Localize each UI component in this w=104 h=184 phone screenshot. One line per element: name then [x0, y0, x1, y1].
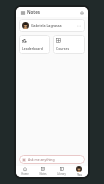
button[interactable]: Notifications — [78, 9, 85, 16]
staticText: Ask me anything — [28, 157, 55, 162]
button[interactable]: More options — [76, 23, 82, 29]
button[interactable]: Courses — [53, 35, 85, 54]
staticText: Home — [21, 172, 29, 176]
staticText: Courses — [56, 46, 70, 51]
button[interactable]: Leaderboard — [19, 35, 50, 54]
button[interactable]: Gabriela Lagrassa — [19, 19, 85, 32]
button[interactable]: Menu — [19, 9, 26, 16]
staticText: You — [77, 173, 82, 177]
staticText: Leaderboard — [22, 46, 43, 51]
button[interactable]: Notes — [34, 166, 52, 177]
staticText: Notes — [27, 9, 41, 15]
button[interactable]: Ask me anything — [19, 155, 85, 164]
staticText: Library — [57, 172, 66, 176]
button[interactable]: Profile — [70, 166, 88, 177]
staticText: Gabriela Lagrassa — [31, 23, 62, 28]
staticText: Notes — [39, 172, 47, 176]
button[interactable]: Library — [52, 166, 70, 177]
button[interactable]: Home — [16, 166, 34, 177]
